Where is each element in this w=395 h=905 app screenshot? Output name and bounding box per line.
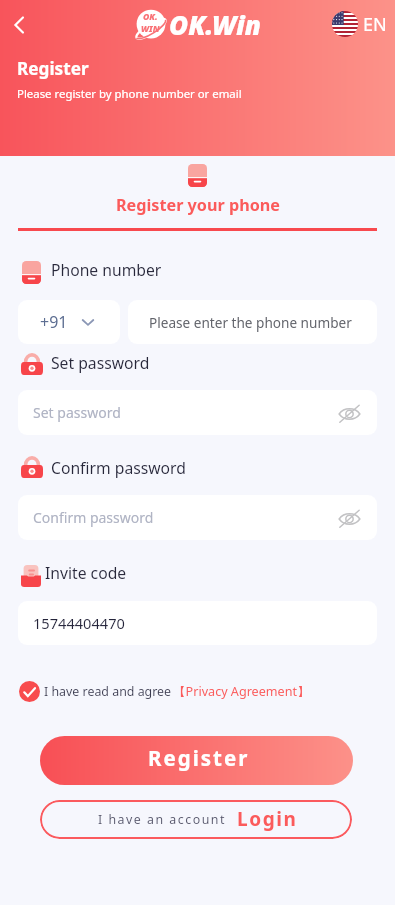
- staticText: 15744404470: [33, 613, 125, 633]
- button[interactable]: Register: [40, 736, 353, 785]
- staticText: I have read and agree: [44, 683, 172, 700]
- button[interactable]: Show password: [337, 506, 361, 530]
- staticText: Invite code: [45, 562, 127, 583]
- button[interactable]: 15744404470: [18, 601, 377, 645]
- staticText: OK.: [143, 11, 158, 23]
- staticText: Phone number: [51, 259, 162, 280]
- staticText: Set password: [51, 352, 150, 373]
- staticText: Set password: [33, 403, 121, 422]
- staticText: Please register by phone number or email: [17, 86, 242, 102]
- staticText: WIN: [141, 23, 160, 35]
- button[interactable]: Show password: [337, 401, 361, 425]
- staticText: Please enter the phone number: [149, 313, 352, 332]
- staticText: Register: [148, 744, 250, 772]
- staticText: 【Privacy Agreement】: [173, 683, 310, 700]
- staticText: Confirm password: [51, 457, 186, 478]
- button[interactable]: Back: [1, 7, 37, 43]
- button[interactable]: Set password: [18, 390, 377, 435]
- button[interactable]: +91: [18, 300, 120, 344]
- staticText: I have an account: [98, 811, 226, 828]
- button[interactable]: EN: [332, 11, 387, 37]
- staticText: Register your phone: [116, 194, 280, 216]
- button[interactable]: I have an account: [40, 800, 352, 839]
- staticText: OK.Win: [169, 7, 261, 42]
- staticText: Confirm password: [33, 508, 154, 527]
- button[interactable]: I have read and agree: [19, 681, 310, 702]
- staticText: +91: [40, 311, 68, 333]
- button[interactable]: Please enter the phone number: [128, 300, 377, 344]
- staticText: Login: [237, 806, 298, 832]
- staticText: Register: [17, 57, 89, 80]
- button[interactable]: Confirm password: [18, 495, 377, 540]
- staticText: EN: [363, 12, 387, 37]
